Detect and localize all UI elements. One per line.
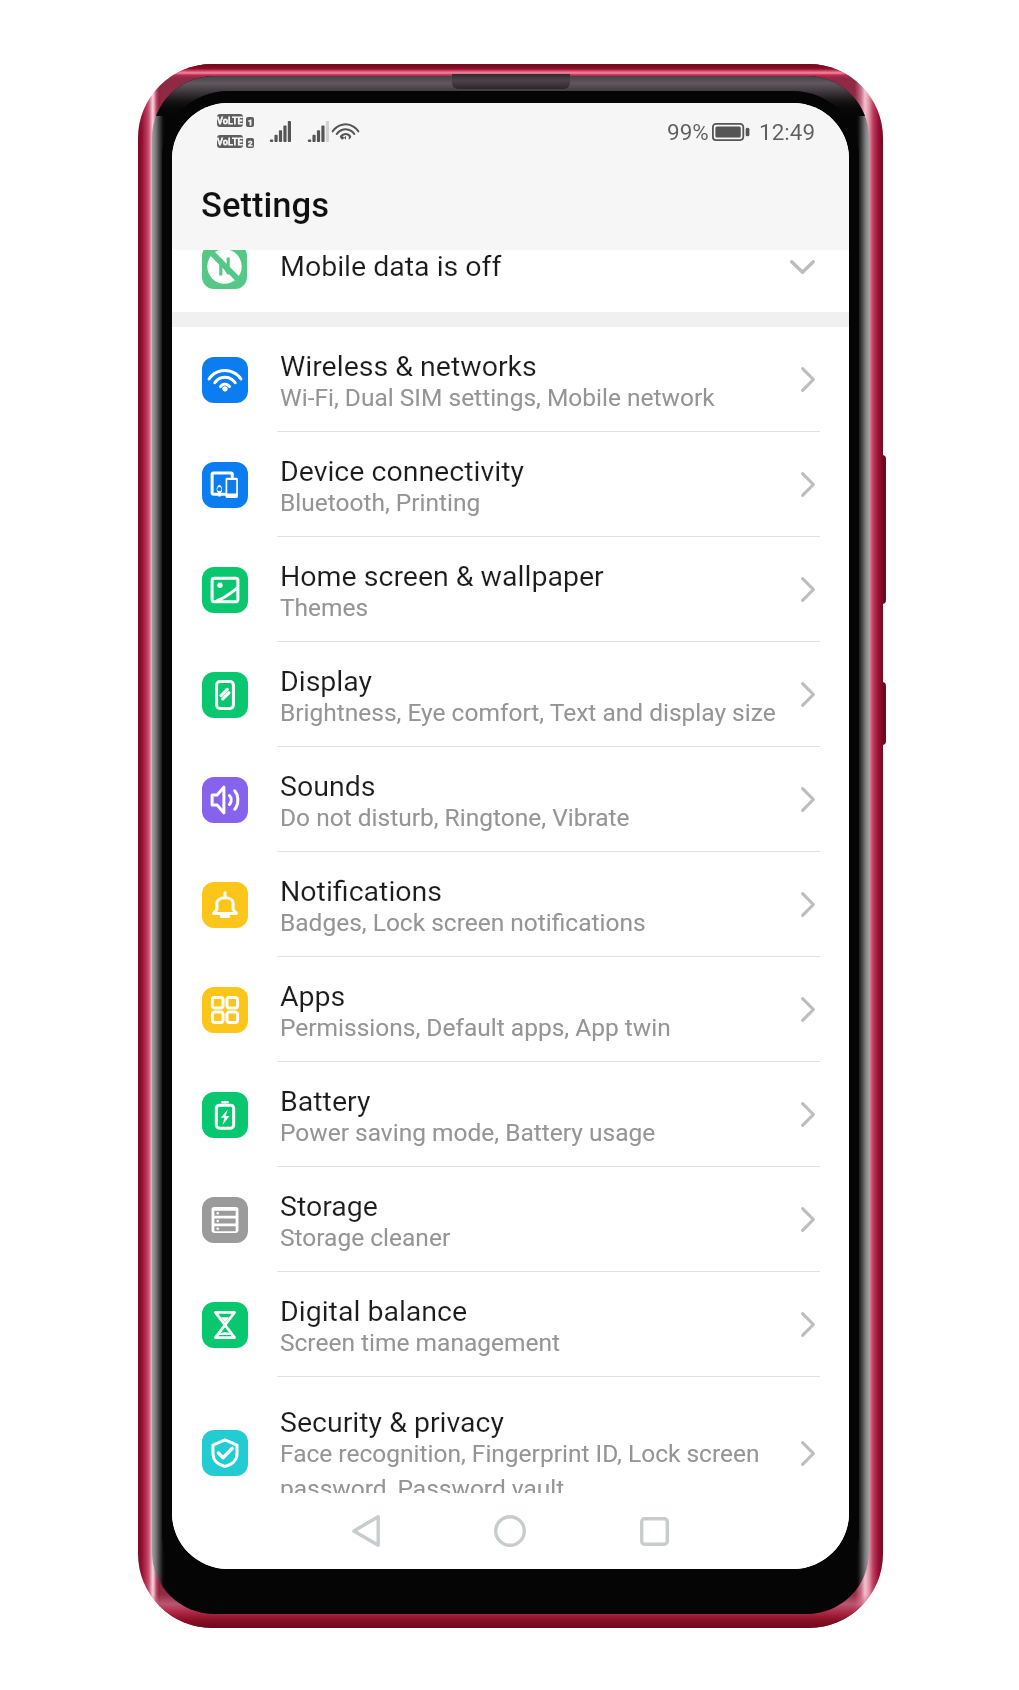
staticText: Apps: [280, 980, 346, 1013]
staticText: 1: [248, 118, 253, 127]
staticText: Storage: [280, 1190, 378, 1223]
staticText: Screen time management: [280, 1328, 561, 1357]
staticText: Do not disturb, Ringtone, Vibrate: [280, 803, 630, 832]
button[interactable]: Display: [172, 642, 849, 747]
staticText: Sounds: [280, 770, 376, 803]
button[interactable]: Notifications: [172, 852, 849, 957]
staticText: Brightness, Eye comfort, Text and displa…: [280, 698, 776, 727]
button[interactable]: Recents: [582, 1493, 726, 1569]
button[interactable]: Device connectivity: [172, 432, 849, 537]
button[interactable]: Storage: [172, 1167, 849, 1272]
staticText: Wireless & networks: [280, 350, 537, 383]
staticText: Battery: [280, 1085, 371, 1118]
button[interactable]: Home screen & wallpaper: [172, 537, 849, 642]
staticText: VoLTE: [217, 115, 243, 126]
staticText: Digital balance: [280, 1295, 468, 1328]
staticText: VoLTE: [217, 136, 243, 147]
button[interactable]: Sounds: [172, 747, 849, 852]
staticText: Display: [280, 665, 373, 698]
button[interactable]: Battery: [172, 1062, 849, 1167]
staticText: Wi-Fi, Dual SIM settings, Mobile network: [280, 383, 715, 412]
staticText: Bluetooth, Printing: [280, 488, 481, 517]
staticText: 99%: [667, 119, 709, 145]
button[interactable]: Wireless & networks: [172, 327, 849, 432]
staticText: Permissions, Default apps, App twin: [280, 1013, 671, 1042]
staticText: Security & privacy: [280, 1406, 505, 1439]
button[interactable]: Home: [438, 1493, 582, 1569]
staticText: Home screen & wallpaper: [280, 560, 604, 593]
staticText: 2: [248, 139, 253, 148]
staticText: Themes: [280, 593, 369, 622]
button[interactable]: Back: [294, 1493, 438, 1569]
button[interactable]: Apps: [172, 957, 849, 1062]
staticText: Storage cleaner: [280, 1223, 451, 1252]
staticText: Mobile data is off: [280, 250, 502, 283]
staticText: Notifications: [280, 875, 443, 908]
staticText: Device connectivity: [280, 455, 524, 488]
staticText: Badges, Lock screen notifications: [280, 908, 646, 937]
button[interactable]: Security & privacy: [172, 1377, 849, 1557]
staticText: Settings: [201, 185, 330, 226]
staticText: Face recognition, Fingerprint ID, Lock s…: [280, 1439, 760, 1503]
staticText: Power saving mode, Battery usage: [280, 1118, 656, 1147]
button[interactable]: Mobile data is off: [172, 250, 849, 312]
staticText: 12:49: [759, 119, 816, 145]
button[interactable]: Digital balance: [172, 1272, 849, 1377]
